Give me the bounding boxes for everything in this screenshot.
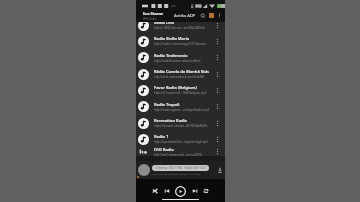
staticText: Radio 1: [154, 134, 169, 139]
staticText: Radio Testimonio: [154, 53, 188, 58]
staticText: http://r2citi.casbroadcast.com/cb/ck480: [154, 75, 205, 79]
button[interactable]: Shuffle: [152, 188, 158, 194]
staticText: OUI Radio: [154, 147, 174, 152]
staticText: https://radio.ngarnet...us/tropoli/radio…: [154, 108, 209, 112]
staticText: Web Radio: [143, 17, 157, 21]
staticText: Favor Radio (Belgium): [154, 85, 197, 90]
staticText: https://ic1.sunshineli...7h80/belgium.mp…: [154, 91, 207, 95]
button[interactable]: Play: [175, 186, 186, 197]
button[interactable]: Favor Radio (Belgium): [136, 82, 225, 98]
button[interactable]: More options: [217, 13, 222, 18]
button[interactable]: Radio 1: [136, 131, 225, 147]
button[interactable]: OUI Radio: [136, 147, 225, 156]
button[interactable]: Radio Testimonio: [136, 49, 225, 66]
button[interactable]: Station options: [214, 22, 221, 29]
button[interactable]: Station options: [214, 136, 221, 143]
staticText: https://radio9.siusam.rabscom/listen: [154, 59, 201, 63]
staticText: http://m1.radiomania...stream.8 M1.3/lis…: [152, 172, 201, 175]
button[interactable]: Recreation Radio: [136, 115, 225, 131]
staticText: Radio Uno: [154, 22, 175, 25]
button[interactable]: Station options: [214, 54, 221, 61]
staticText: https://stream1.sescran...AC1905d6d8b9fs: [154, 124, 208, 128]
staticText: Antika ADP: [174, 13, 196, 18]
button[interactable]: Account: [209, 13, 214, 18]
staticText: Rádio Canela da Manhã Kids: [154, 69, 209, 74]
button[interactable]: Previous: [164, 188, 170, 194]
button[interactable]: Next: [192, 188, 198, 194]
button[interactable]: Station options: [214, 71, 221, 78]
staticText: Radio Stella Maria: [154, 36, 190, 41]
button[interactable]: Cinema 103.1 FM - Rádio 63 / 630: [136, 161, 225, 179]
button[interactable]: Station options: [214, 87, 221, 94]
button[interactable]: Station options: [214, 148, 221, 155]
staticText: http://mp7.stream.mod...om/oui/OUI/: [154, 153, 203, 156]
staticText: Ina Stauw: [143, 11, 163, 16]
staticText: Cinema 103.1 FM - Rádio 63 / 630: [156, 166, 206, 170]
button[interactable]: Radio Uno: [136, 22, 225, 33]
button[interactable]: Rádio Canela da Manhã Kids: [136, 66, 225, 82]
button[interactable]: Download: [217, 167, 223, 173]
button[interactable]: Search: [200, 13, 206, 19]
button[interactable]: Station options: [214, 38, 221, 45]
staticText: Radio Tropoli: [154, 102, 180, 107]
staticText: https://ijanradiom1fm...degreart.high.mp…: [154, 140, 208, 144]
button[interactable]: Repeat: [203, 188, 209, 194]
button[interactable]: Station options: [214, 120, 221, 127]
button[interactable]: Radio Tropoli: [136, 98, 225, 115]
staticText: https://radio1.astreaming.p/1313/stream: [154, 42, 206, 46]
button[interactable]: Station options: [214, 103, 221, 110]
staticText: https://19062.live.stre...ami/45d-080-li…: [154, 26, 205, 30]
button[interactable]: Radio Stella Maria: [136, 33, 225, 49]
staticText: Recreation Radio: [154, 118, 188, 123]
